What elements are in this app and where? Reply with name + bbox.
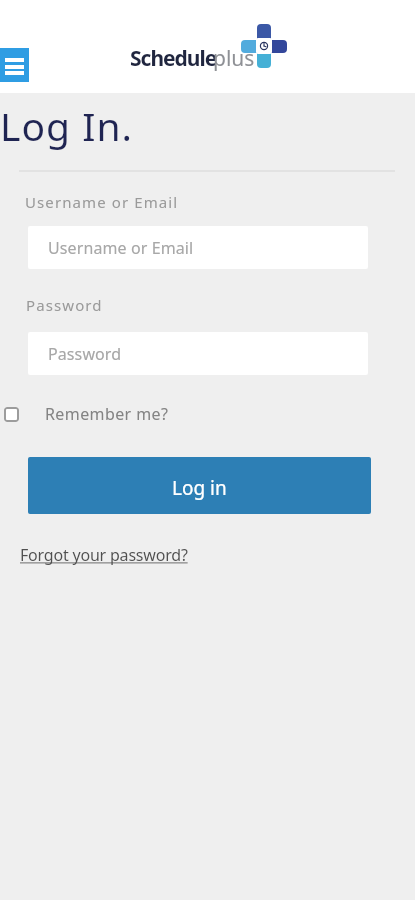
staticText: Log in xyxy=(172,475,227,501)
staticText: Password xyxy=(48,343,122,365)
staticText: Schedule xyxy=(130,44,217,73)
staticText: Username or Email xyxy=(48,237,194,259)
button[interactable]: Log in xyxy=(28,457,371,514)
button[interactable]: Forgot your password? xyxy=(20,544,188,566)
button[interactable]: Username or Email xyxy=(28,226,368,269)
staticText: Password xyxy=(26,295,103,315)
staticText: plus xyxy=(213,44,255,73)
button[interactable] xyxy=(0,48,29,82)
staticText: Username or Email xyxy=(25,192,179,212)
button[interactable]: Password xyxy=(28,332,368,375)
staticText: Remember me? xyxy=(45,403,169,425)
button[interactable] xyxy=(4,407,19,422)
staticText: Log In. xyxy=(0,99,133,152)
